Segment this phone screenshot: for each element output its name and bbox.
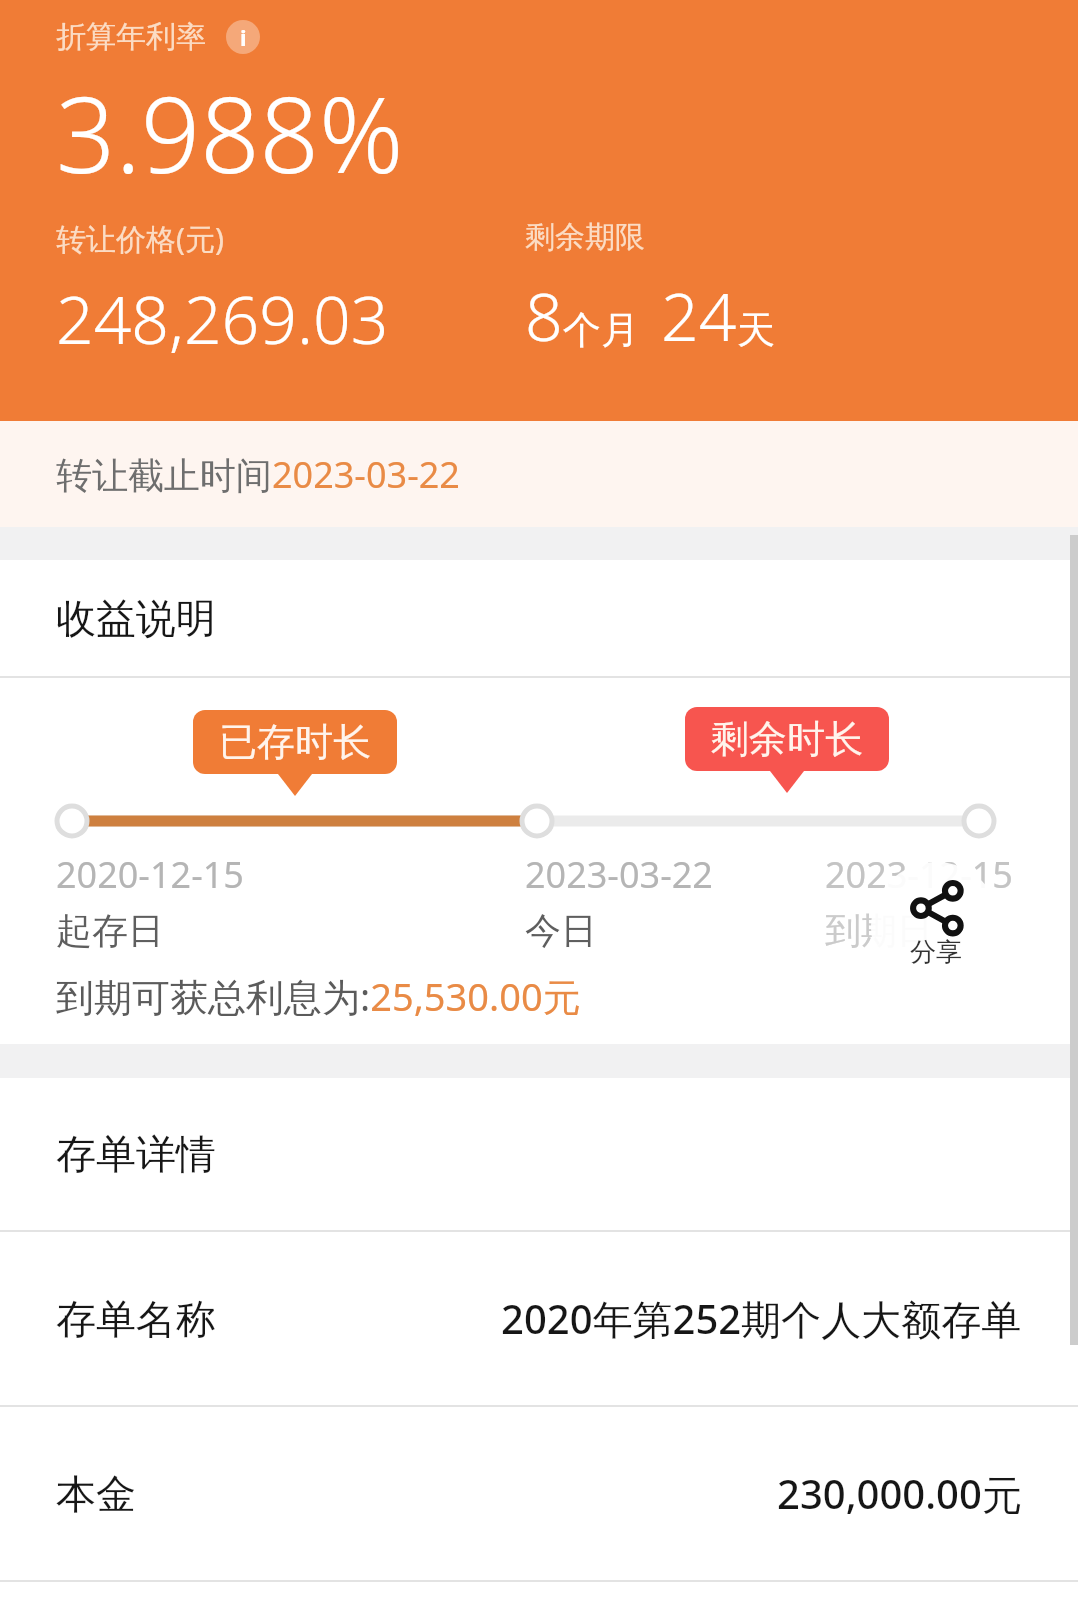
button[interactable]: 分享 — [871, 862, 1001, 992]
staticText: 分享 — [910, 936, 962, 969]
staticText: 剩余期限 — [525, 218, 645, 256]
staticText: 起存日 — [56, 908, 164, 953]
staticText: 24 — [661, 270, 737, 360]
staticText: 到期可获总利息为:25,530.00元 — [56, 970, 581, 1022]
staticText: 存单详情 — [56, 1129, 216, 1179]
staticText: 今日 — [525, 908, 597, 953]
staticText: 转让价格(元) — [56, 218, 224, 259]
staticText: 2023-12-15 — [825, 850, 1013, 899]
staticText: 个月 — [563, 306, 639, 354]
staticText: 转让截止时间2023-03-22 — [56, 450, 460, 499]
staticText: 折算年利率 — [56, 18, 206, 56]
button[interactable]: 转让截止时间2023-03-22 — [0, 421, 1078, 527]
staticText: 存单名称 — [56, 1294, 216, 1344]
staticText: 2020年第252期个人大额存单 — [501, 1291, 1022, 1346]
staticText: 3.988% — [56, 62, 404, 204]
button[interactable]: 存单名称 — [0, 1232, 1078, 1405]
staticText: 230,000.00元 — [777, 1466, 1022, 1521]
staticText: 收益说明 — [56, 593, 216, 643]
button[interactable]: 本金 — [0, 1407, 1078, 1580]
staticText: i — [240, 22, 247, 52]
staticText: 8 — [525, 270, 563, 360]
staticText: 剩余时长 — [711, 715, 863, 763]
staticText: 天 — [737, 306, 775, 354]
staticText: 2023-03-22 — [525, 850, 713, 899]
staticText: 本金 — [56, 1469, 136, 1519]
staticText: 248,269.03 — [56, 273, 389, 363]
staticText: 到期日 — [825, 908, 933, 953]
staticText: 2020-12-15 — [56, 850, 244, 899]
button[interactable]: 利率说明 — [226, 20, 260, 54]
staticText: 已存时长 — [219, 718, 371, 766]
